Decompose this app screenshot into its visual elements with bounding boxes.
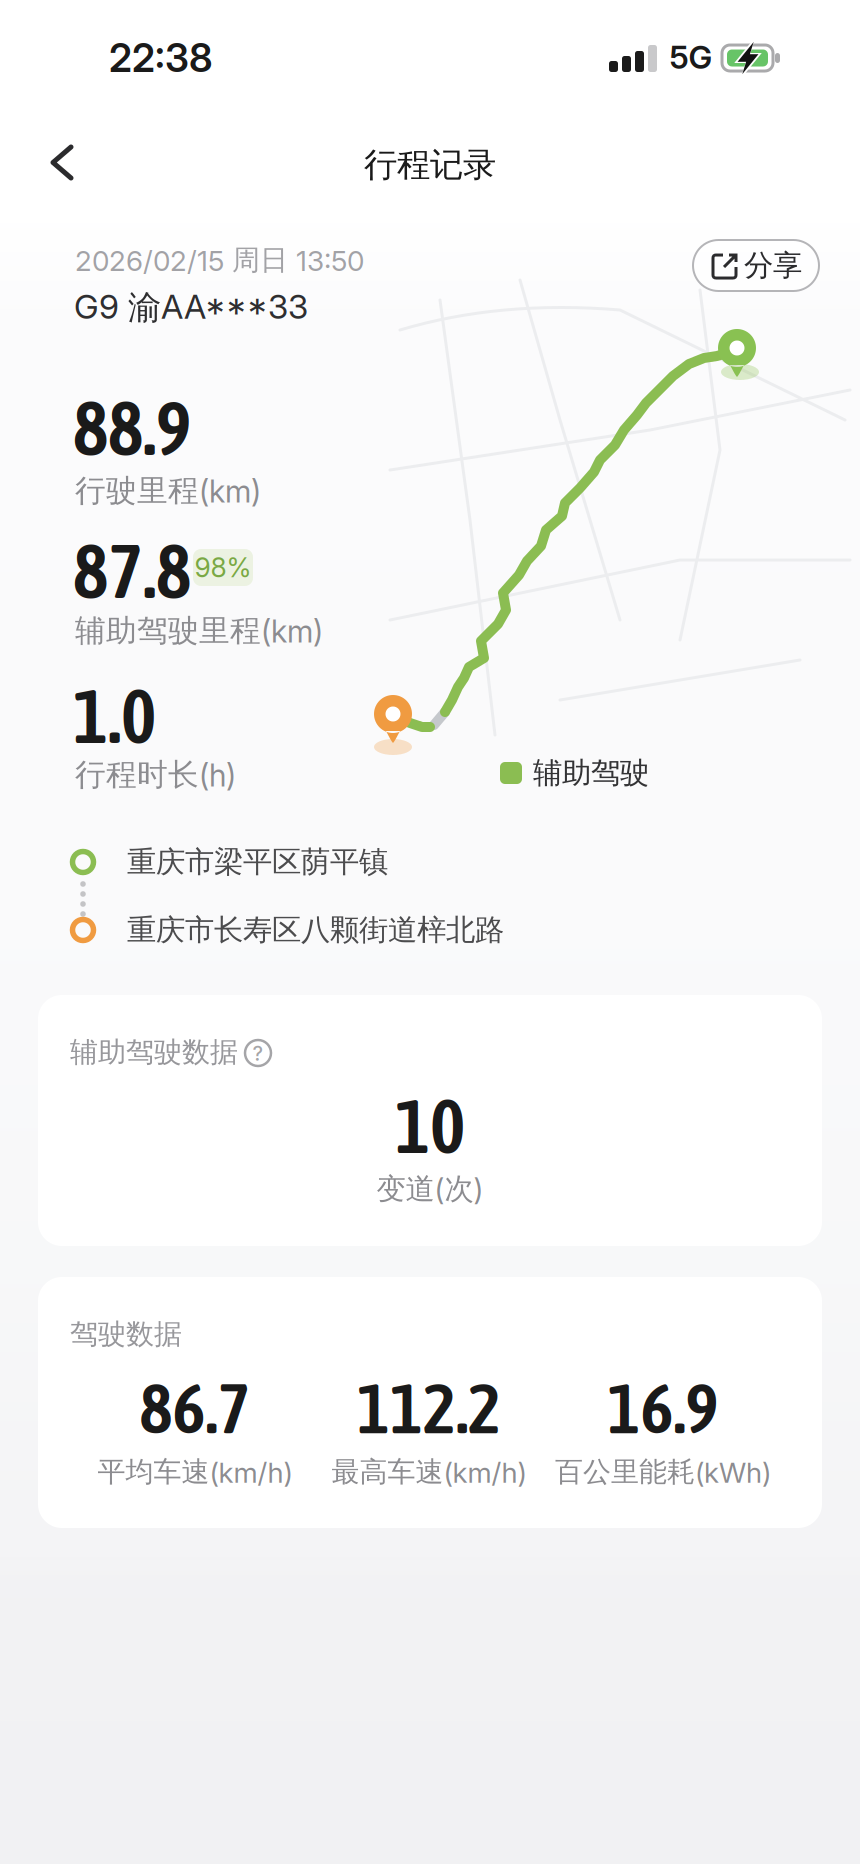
staticText: 112.2 [357, 1368, 501, 1448]
staticText: 重庆市梁平区荫平镇 [127, 844, 388, 880]
button[interactable]: 分享 [693, 240, 819, 291]
button[interactable]: 辅助驾驶数据说明 [245, 1040, 271, 1066]
staticText: 百公里能耗(kWh) [555, 1455, 771, 1489]
staticText: 22:38 [109, 35, 213, 81]
staticText: 变道(次) [376, 1171, 483, 1207]
staticText: 1.0 [73, 673, 156, 759]
staticText: ? [252, 1042, 263, 1065]
staticText: G9 渝AA***33 [74, 287, 308, 328]
staticText: 行程时长(h) [75, 756, 236, 794]
staticText: 辅助驾驶 [533, 755, 649, 791]
staticText: 2026/02/15 周日 13:50 [75, 243, 364, 277]
staticText: 16.9 [607, 1368, 718, 1448]
staticText: 辅助驾驶里程(km) [75, 612, 323, 650]
staticText: 98% [194, 552, 251, 583]
staticText: 87.8 [73, 528, 191, 614]
staticText: 5G [669, 38, 712, 76]
button[interactable]: Back [51, 145, 87, 181]
staticText: 驾驶数据 [70, 1317, 182, 1351]
staticText: 辅助驾驶数据 [70, 1035, 238, 1069]
staticText: 10 [395, 1083, 465, 1169]
staticText: 88.9 [73, 385, 191, 471]
staticText: 分享 [744, 247, 802, 283]
staticText: 行程记录 [364, 144, 496, 185]
staticText: 重庆市长寿区八颗街道梓北路 [127, 912, 504, 948]
staticText: 行驶里程(km) [75, 472, 261, 510]
staticText: 86.7 [139, 1368, 250, 1448]
staticText: 最高车速(km/h) [331, 1455, 526, 1489]
staticText: 平均车速(km/h) [97, 1455, 292, 1489]
